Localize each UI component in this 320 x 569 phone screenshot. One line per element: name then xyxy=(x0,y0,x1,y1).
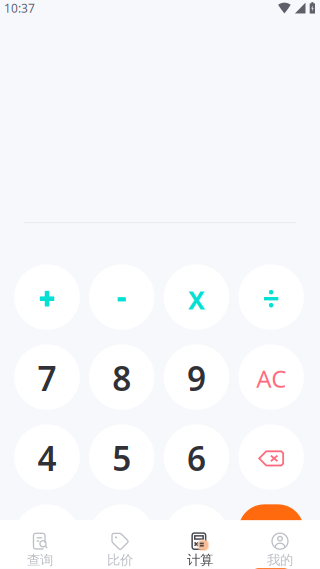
button[interactable]: 8 xyxy=(89,344,154,410)
staticText: 9 xyxy=(187,356,206,400)
staticText: 比价 xyxy=(107,552,133,568)
staticText: 4 xyxy=(37,436,56,480)
staticText: 5 xyxy=(112,436,131,480)
button[interactable]: 比价 xyxy=(80,520,160,568)
staticText: 1 xyxy=(37,516,56,560)
staticText: 10:37 xyxy=(4,0,35,16)
button[interactable]: plus xyxy=(14,264,80,330)
button[interactable]: divide xyxy=(238,264,304,330)
button[interactable]: 3 xyxy=(164,504,229,569)
staticText: 6 xyxy=(187,436,206,480)
button[interactable]: 我的 xyxy=(240,520,320,568)
staticText: AC xyxy=(256,362,286,394)
staticText: 7 xyxy=(37,356,56,400)
button[interactable]: 查询 xyxy=(0,520,80,568)
button[interactable]: 4 xyxy=(14,424,80,490)
button[interactable]: equals xyxy=(238,504,304,569)
button[interactable]: minus xyxy=(89,264,154,330)
button[interactable]: 9 xyxy=(164,344,229,410)
button[interactable]: 5 xyxy=(89,424,154,490)
button[interactable]: AC xyxy=(238,344,304,410)
staticText: X xyxy=(188,283,205,316)
button[interactable]: 计算 xyxy=(160,520,240,568)
button[interactable]: 2 xyxy=(89,504,154,569)
staticText: 2 xyxy=(112,516,131,560)
staticText: 查询 xyxy=(27,552,53,568)
button[interactable]: multiply xyxy=(164,264,229,330)
button[interactable]: 7 xyxy=(14,344,80,410)
button[interactable]: 1 xyxy=(14,504,80,569)
button[interactable]: backspace xyxy=(238,424,304,490)
staticText: 我的 xyxy=(267,552,293,568)
button[interactable]: 6 xyxy=(164,424,229,490)
staticText: 计算 xyxy=(187,552,213,568)
staticText: 3 xyxy=(187,516,206,560)
staticText: 8 xyxy=(112,356,131,400)
